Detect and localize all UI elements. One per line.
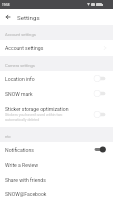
button[interactable] <box>94 75 106 82</box>
staticText: Account settings <box>5 32 36 37</box>
button[interactable]: Share with friends <box>0 172 113 187</box>
staticText: Write a Review <box>5 162 39 168</box>
staticText: Stickers you haven't used within two aut… <box>5 113 63 122</box>
button[interactable] <box>94 90 106 97</box>
button[interactable]: SNOW@Facebook <box>0 187 113 200</box>
staticText: Sticker storage optimization <box>5 106 69 112</box>
button[interactable]: Back <box>0 9 16 25</box>
staticText: SNOW@Facebook <box>5 191 47 197</box>
button[interactable] <box>94 111 106 118</box>
staticText: Account settings <box>5 45 44 51</box>
staticText: Settings <box>17 14 40 21</box>
button[interactable]: Write a Review <box>0 157 113 172</box>
staticText: Notifications <box>5 147 34 153</box>
button[interactable]: SNOW mark <box>0 86 113 101</box>
button[interactable]: Account settings <box>0 40 113 56</box>
button[interactable]: Location info <box>0 71 113 86</box>
staticText: Location info <box>5 76 35 82</box>
button[interactable]: Sticker storage optimization <box>0 101 113 127</box>
button[interactable]: Notifications <box>0 142 113 157</box>
staticText: 19:58 <box>2 3 10 7</box>
staticText: Camera settings <box>5 63 35 68</box>
button[interactable] <box>94 146 106 153</box>
staticText: SNOW mark <box>5 91 33 97</box>
staticText: etc <box>5 134 11 139</box>
staticText: Share with friends <box>5 177 46 183</box>
